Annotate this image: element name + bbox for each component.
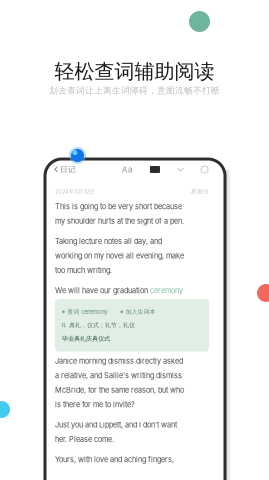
staticText: 2024年5月12日 [55,188,95,195]
staticText: ceremony [150,286,183,295]
staticText: 划去查词让上离生词障碍，意图流畅不打断 [49,85,220,96]
staticText: too much writing. [55,266,112,275]
staticText: 加入生词本 [126,308,156,315]
button[interactable]: 加入生词本 [120,308,156,315]
staticText: 轻松查词辅助阅读 [54,59,214,84]
staticText: This is going to be very short because [55,202,182,211]
staticText: We will have our graduation [55,286,150,295]
staticText: 查词 ceremony [67,308,107,315]
staticText: 星期日 [191,188,209,195]
staticText: Janice morning dismiss directly asked [55,357,183,365]
staticText: n. 典礼，仪式；礼节，礼仪 [62,321,135,329]
button[interactable]: Aa [119,162,135,177]
staticText: my shoulder hurts at the sight of a pen. [55,216,184,225]
staticText: her. Please come. [55,435,114,444]
staticText: 日记 [60,164,76,175]
staticText: Just you and Lippett, and I don't want [55,420,177,429]
button[interactable]: More [198,163,211,176]
staticText: 毕业典礼庆典仪式 [62,335,110,343]
button[interactable]: Bookmark [147,163,163,176]
button[interactable]: 日记 [45,160,76,179]
staticText: Aa [122,165,132,174]
button[interactable]: 查词 ceremony [62,308,107,315]
staticText: working on my novel all evening, make [55,251,184,260]
staticText: McBride, for the same reason, but who [55,386,184,394]
button[interactable]: Table of contents [174,163,187,175]
staticText: a relative, and Sallie's writing dismiss [55,371,182,380]
staticText: is there for me to invite? [55,400,135,409]
staticText: Taking lecture notes all day, and [55,237,162,246]
staticText: Yours, with love and aching fingers, [55,455,174,464]
